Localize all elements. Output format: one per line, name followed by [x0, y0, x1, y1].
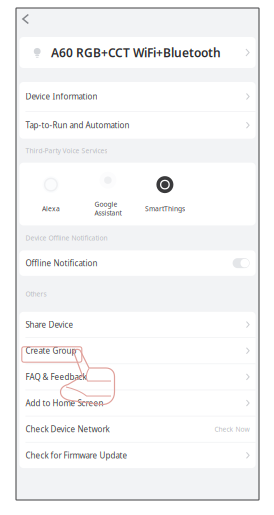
staticText: Alexa [42, 204, 60, 213]
button[interactable]: Check Device Network [19, 416, 256, 442]
button[interactable]: Google Assistant [79, 172, 136, 217]
button[interactable]: Offline Notification [233, 258, 250, 268]
staticText: Add to Home Screen [25, 398, 103, 408]
staticText: Google Assistant [94, 200, 121, 217]
staticText: SmartThings [145, 204, 185, 213]
staticText: Check Now [215, 425, 250, 434]
button[interactable]: FAQ & Feedback [19, 364, 256, 390]
button[interactable]: Check for Firmware Update [19, 443, 256, 468]
staticText: A60 RGB+CCT WiFi+Bluetooth [51, 44, 221, 60]
staticText: Third-Party Voice Services [25, 146, 107, 155]
staticText: Share Device [25, 319, 73, 330]
button[interactable]: SmartThings [136, 176, 193, 213]
staticText: Check for Firmware Update [25, 450, 127, 461]
staticText: FAQ & Feedback [25, 372, 86, 382]
button[interactable]: Create Group [19, 338, 256, 363]
staticText: Device Information [25, 91, 97, 102]
staticText: Others [25, 289, 46, 298]
button[interactable]: A60 RGB+CCT WiFi+Bluetooth [19, 37, 256, 68]
button[interactable]: Alexa [22, 176, 79, 213]
button[interactable]: Tap-to-Run and Automation [19, 112, 256, 139]
button[interactable]: Back [16, 9, 36, 29]
button[interactable]: Add to Home Screen [19, 390, 256, 416]
staticText: Check Device Network [25, 424, 109, 434]
button[interactable]: Share Device [19, 312, 256, 337]
button[interactable]: Device Information [19, 82, 256, 111]
staticText: Offline Notification [25, 258, 97, 268]
staticText: Tap-to-Run and Automation [25, 120, 129, 130]
staticText: Create Group [25, 345, 76, 356]
staticText: Device Offline Notification [25, 233, 107, 242]
